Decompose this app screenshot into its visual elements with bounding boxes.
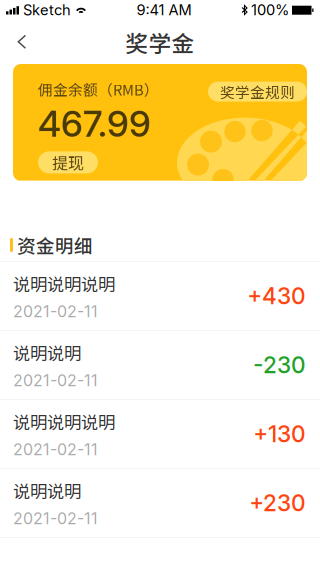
staticText: 2021-02-11	[13, 509, 98, 528]
staticText: 467.99	[38, 102, 151, 145]
staticText: 说明说明	[13, 478, 81, 503]
staticText: Sketch	[23, 1, 71, 19]
button[interactable]: 说明说明	[0, 331, 320, 400]
button[interactable]: 说明说明	[0, 469, 320, 538]
staticText: +430	[247, 282, 306, 310]
staticText: 佣金余额（RMB）	[38, 79, 159, 100]
staticText: 说明说明	[13, 340, 81, 365]
staticText: 资金明细	[17, 231, 93, 258]
staticText: +230	[249, 489, 306, 517]
button[interactable]: Back	[0, 20, 49, 64]
button[interactable]: 说明说明说明	[0, 262, 320, 331]
button[interactable]: 提现	[38, 151, 98, 173]
staticText: -230	[253, 351, 306, 379]
staticText: 2021-02-11	[13, 302, 98, 321]
staticText: 100%	[251, 1, 289, 19]
button[interactable]: 说明说明说明	[0, 400, 320, 469]
staticText: 提现	[52, 151, 84, 174]
staticText: 奖学金规则	[220, 81, 295, 102]
staticText: 说明说明说明	[13, 409, 115, 434]
staticText: 奖学金	[125, 26, 194, 58]
staticText: 9:41 AM	[136, 1, 191, 19]
staticText: 2021-02-11	[13, 371, 98, 390]
staticText: 说明说明说明	[13, 271, 115, 296]
staticText: 2021-02-11	[13, 440, 98, 459]
staticText: +130	[253, 420, 306, 448]
button[interactable]: 奖学金规则	[208, 82, 307, 102]
